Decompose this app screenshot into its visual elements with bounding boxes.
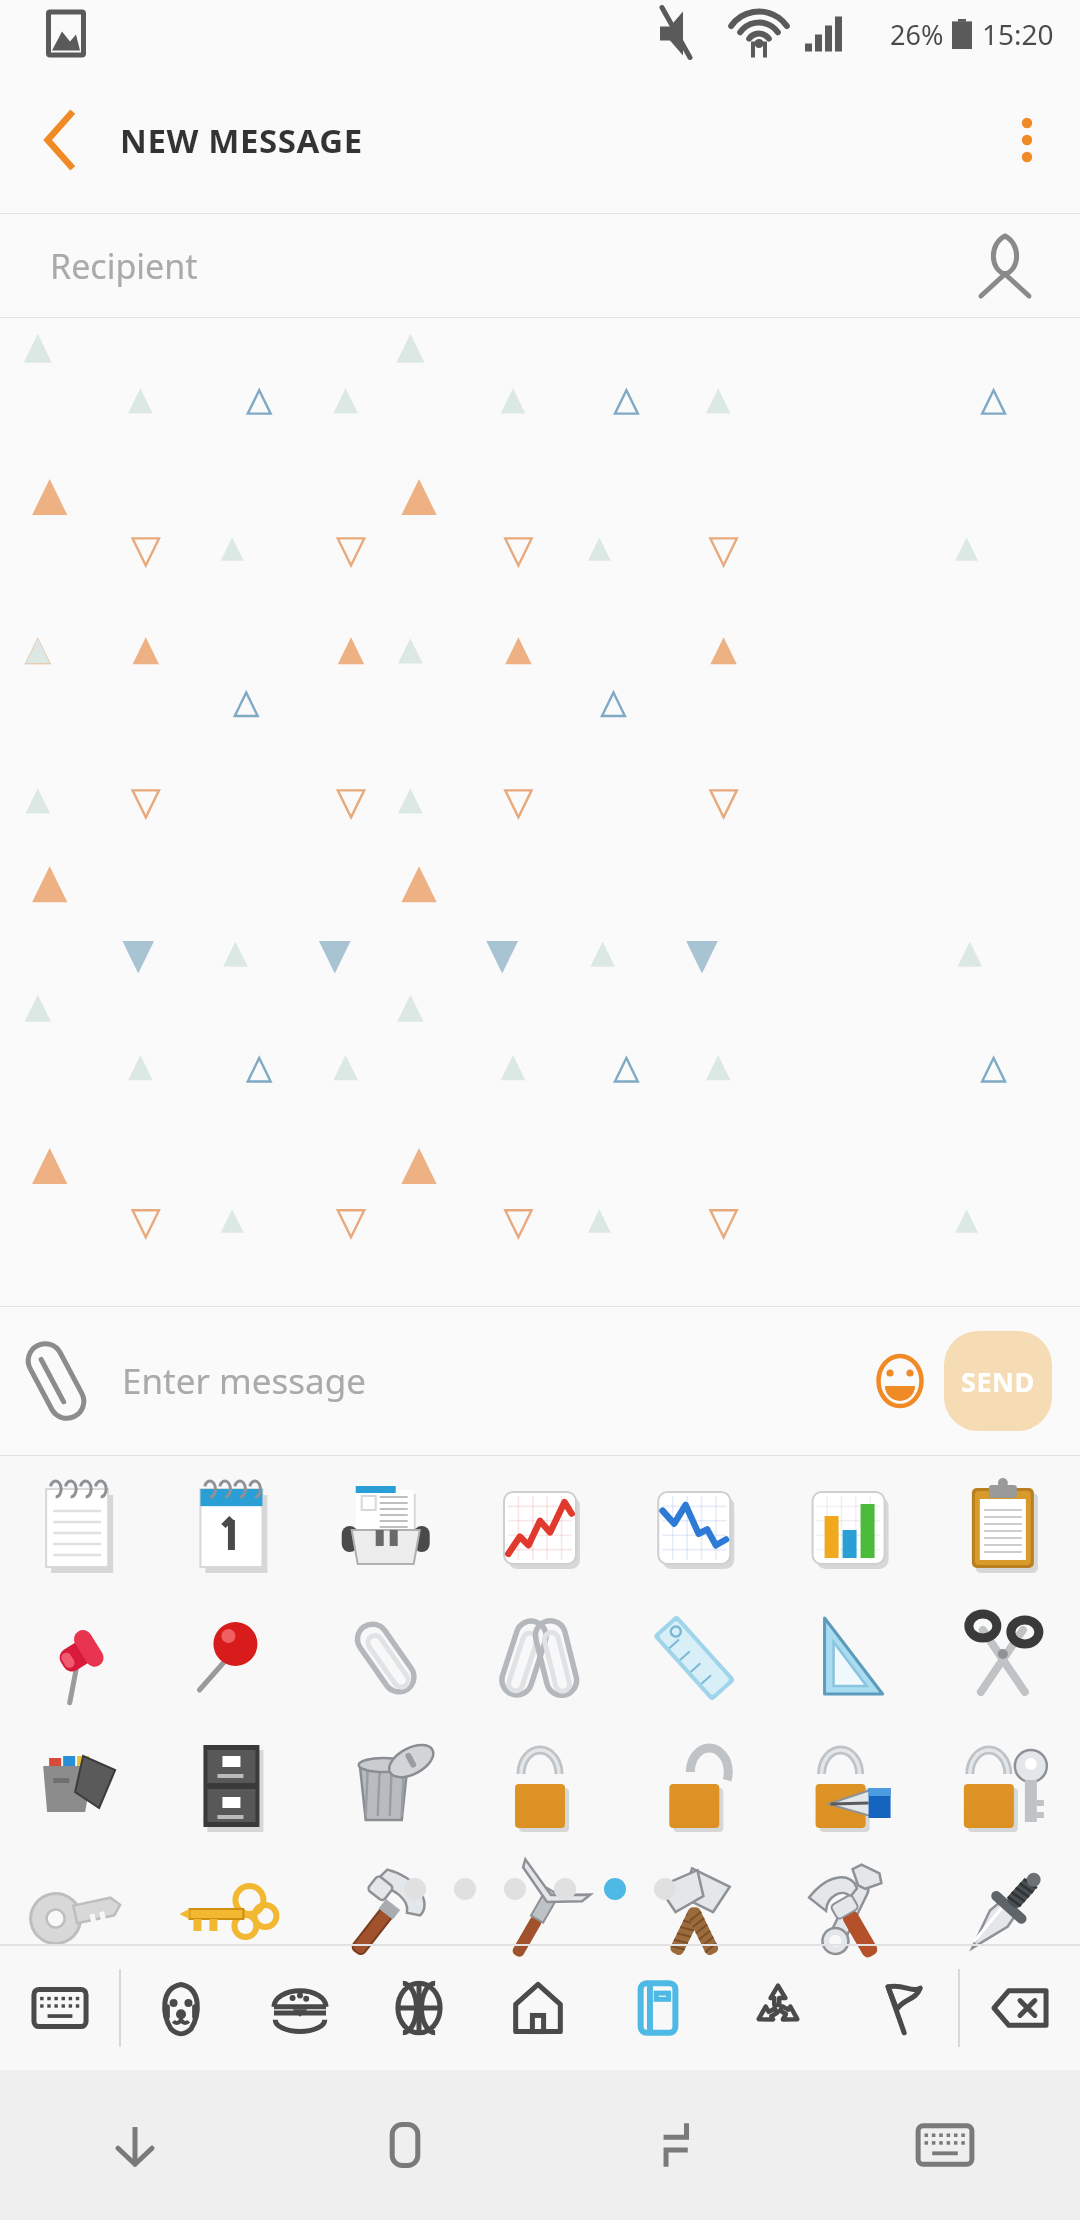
button[interactable]: Animals xyxy=(121,1946,240,2070)
staticText: Enter message xyxy=(122,1357,366,1405)
button[interactable]: Food xyxy=(240,1946,359,2070)
button[interactable] xyxy=(604,1878,626,1900)
staticText: 26% xyxy=(890,16,944,53)
button[interactable]: SEND xyxy=(944,1331,1052,1431)
button[interactable]: Flags xyxy=(838,1946,958,2070)
button[interactable] xyxy=(554,1878,576,1900)
button[interactable]: Activities xyxy=(359,1946,478,2070)
button[interactable] xyxy=(404,1878,426,1900)
button[interactable]: Objects xyxy=(598,1946,718,2070)
staticText: 15:20 xyxy=(982,15,1054,53)
button[interactable]: Back xyxy=(540,2070,810,2220)
button[interactable]: Backspace xyxy=(960,1946,1080,2070)
button[interactable]: Back xyxy=(20,104,92,176)
button[interactable]: Keyboard xyxy=(0,1946,119,2070)
button[interactable]: Recents xyxy=(270,2070,540,2220)
staticText: SEND xyxy=(961,1363,1035,1400)
button[interactable]: Recipient xyxy=(0,214,1080,317)
button[interactable]: Attach xyxy=(20,1345,92,1417)
button[interactable]: Add recipient from contacts xyxy=(974,235,1036,297)
staticText: NEW MESSAGE xyxy=(120,118,363,163)
button[interactable] xyxy=(504,1878,526,1900)
button[interactable]: Symbols xyxy=(718,1946,838,2070)
button[interactable]: Keyboard xyxy=(810,2070,1080,2220)
button[interactable] xyxy=(654,1878,676,1900)
button[interactable] xyxy=(454,1878,476,1900)
button[interactable]: Emoji xyxy=(864,1345,936,1417)
staticText: Recipient xyxy=(50,243,198,289)
button[interactable]: Hide keyboard xyxy=(0,2070,270,2220)
button[interactable]: Travel and places xyxy=(478,1946,598,2070)
button[interactable]: More options xyxy=(992,105,1062,175)
